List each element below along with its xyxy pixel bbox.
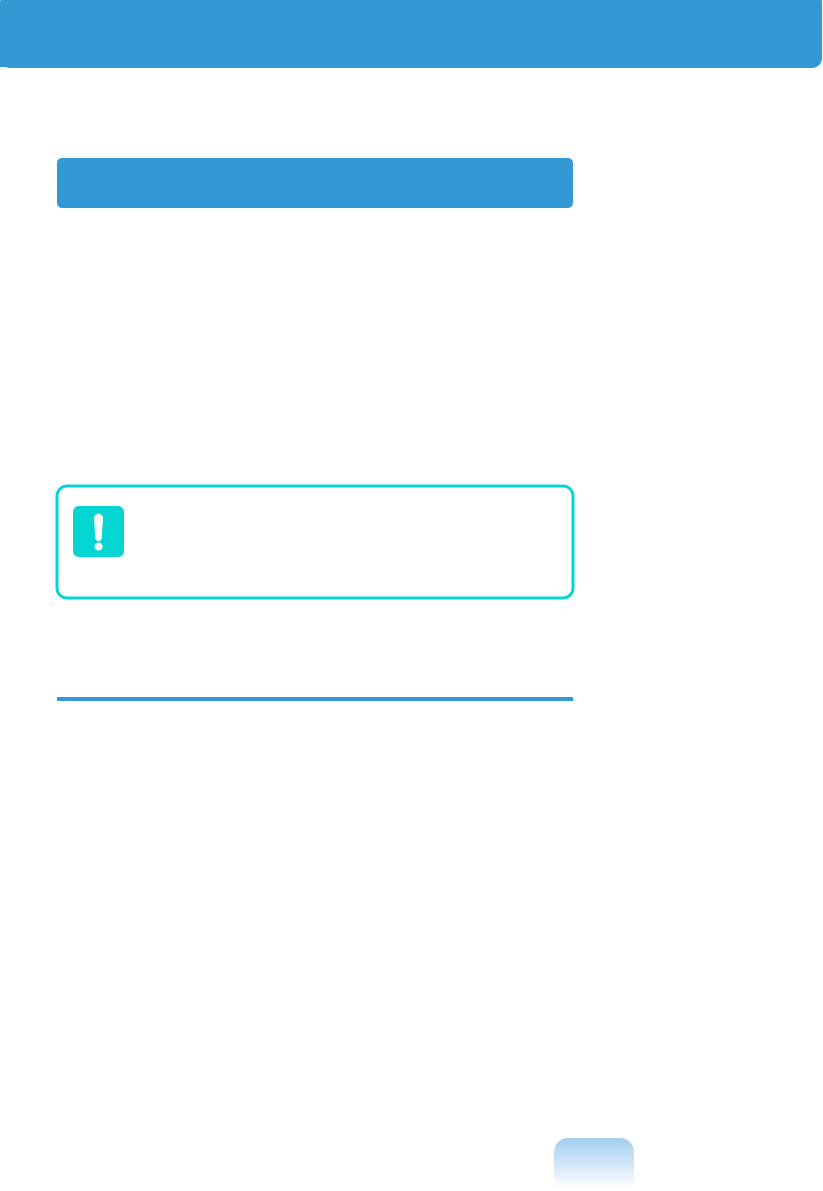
- button[interactable]: Page indicator: [554, 1138, 634, 1191]
- button[interactable]: Header: [0, 0, 822, 67]
- button[interactable]: Title bar: [57, 158, 573, 208]
